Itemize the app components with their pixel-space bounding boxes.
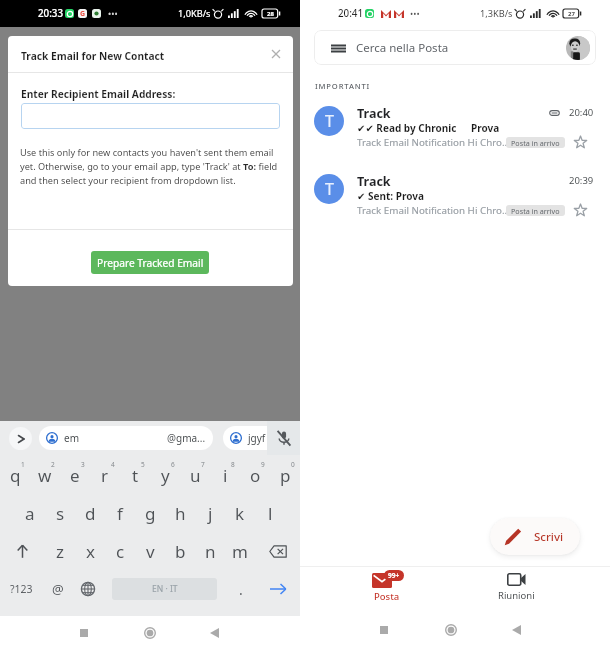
button[interactable]: o: [240, 456, 270, 494]
button[interactable]: l: [255, 494, 285, 532]
button[interactable]: Recents: [68, 617, 100, 649]
staticText: e: [70, 464, 80, 487]
staticText: l: [268, 502, 273, 525]
button[interactable]: q: [0, 456, 30, 494]
button[interactable]: Recents: [368, 614, 400, 646]
button[interactable]: .: [226, 570, 256, 608]
button[interactable]: Scrivi: [490, 518, 580, 555]
staticText: j: [208, 502, 213, 525]
staticText: 4: [111, 460, 115, 469]
button[interactable]: d: [75, 494, 105, 532]
button[interactable]: Sender avatar: [314, 174, 344, 204]
staticText: n: [205, 540, 216, 563]
button[interactable]: Star: [571, 203, 589, 218]
button[interactable]: Open navigation menu: [314, 30, 596, 65]
staticText: jgyf: [248, 431, 266, 445]
button[interactable]: v: [135, 532, 165, 570]
staticText: 1: [21, 460, 25, 469]
button[interactable]: Sender avatar: [300, 105, 610, 165]
staticText: Track: [357, 105, 391, 120]
button[interactable]: a: [15, 494, 45, 532]
staticText: w: [38, 464, 52, 487]
button[interactable]: Back: [198, 617, 230, 649]
button[interactable]: Change keyboard language: [73, 570, 103, 608]
staticText: T: [325, 110, 334, 132]
button[interactable]: em: [39, 426, 213, 450]
button[interactable]: Expand suggestions: [9, 427, 32, 450]
button[interactable]: Close: [266, 44, 286, 64]
button[interactable]: p: [270, 456, 300, 494]
staticText: 7: [201, 460, 205, 469]
staticText: 9: [261, 460, 265, 469]
staticText: Posta in arrivo: [511, 138, 560, 148]
button[interactable]: Voice input off: [267, 421, 300, 455]
staticText: s: [56, 502, 65, 525]
button[interactable]: t: [120, 456, 150, 494]
button[interactable]: j: [195, 494, 225, 532]
staticText: ?123: [10, 582, 33, 596]
staticText: o: [250, 464, 261, 487]
button[interactable]: Prepare Tracked Email: [91, 251, 209, 274]
staticText: g: [145, 502, 156, 525]
button[interactable]: n: [195, 532, 225, 570]
button[interactable]: Home: [435, 614, 467, 646]
staticText: 99+: [388, 571, 400, 580]
button[interactable]: Home: [134, 617, 166, 649]
staticText: t: [132, 464, 139, 487]
staticText: .: [239, 580, 243, 599]
button[interactable]: m: [225, 532, 255, 570]
button[interactable]: Back: [500, 614, 532, 646]
button[interactable]: Sender avatar: [300, 173, 610, 233]
staticText: v: [146, 540, 155, 563]
staticText: 20:40: [569, 106, 594, 119]
button[interactable]: Next: [256, 570, 300, 608]
staticText: Prova: [471, 121, 500, 135]
staticText: q: [10, 464, 21, 487]
button[interactable]: Account: [566, 36, 590, 60]
staticText: r: [101, 464, 109, 487]
button[interactable]: x: [75, 532, 105, 570]
button[interactable]: y: [150, 456, 180, 494]
staticText: u: [190, 464, 201, 487]
button[interactable]: Space: [112, 578, 217, 600]
staticText: ✔ Sent: Prova: [357, 189, 424, 203]
staticText: x: [86, 540, 95, 563]
button[interactable]: i: [210, 456, 240, 494]
staticText: a: [25, 502, 35, 525]
staticText: IMPORTANTI: [315, 81, 371, 91]
staticText: @: [52, 580, 64, 598]
button[interactable]: h: [165, 494, 195, 532]
button[interactable]: Shift: [0, 532, 45, 570]
button[interactable]: s: [45, 494, 75, 532]
staticText: •••: [410, 8, 420, 20]
staticText: Posta: [374, 590, 400, 603]
staticText: f: [117, 502, 123, 525]
button[interactable]: jgyf: [223, 426, 291, 450]
button[interactable]: u: [180, 456, 210, 494]
button[interactable]: r: [90, 456, 120, 494]
button[interactable]: w: [30, 456, 60, 494]
staticText: 27: [568, 10, 575, 18]
staticText: y: [161, 464, 170, 487]
button[interactable]: Star: [571, 135, 589, 150]
button[interactable]: z: [45, 532, 75, 570]
button[interactable]: e: [60, 456, 90, 494]
button[interactable]: Backspace: [255, 532, 300, 570]
button[interactable]: @: [43, 570, 73, 608]
staticText: 28: [267, 10, 274, 18]
staticText: Riunioni: [498, 589, 535, 602]
button[interactable]: Open navigation menu: [327, 37, 349, 59]
button[interactable]: g: [135, 494, 165, 532]
button[interactable]: c: [105, 532, 135, 570]
button[interactable]: 99+: [353, 567, 421, 611]
button[interactable]: Riunioni: [482, 567, 550, 611]
button[interactable]: Recipient email address field: [21, 103, 280, 129]
staticText: 1,3KB/s: [480, 7, 513, 20]
button[interactable]: Sender avatar: [314, 106, 344, 136]
button[interactable]: f: [105, 494, 135, 532]
button[interactable]: ?123: [0, 570, 43, 608]
staticText: 5: [141, 460, 145, 469]
button[interactable]: k: [225, 494, 255, 532]
staticText: Track Email Notification Hi Chro...: [357, 136, 510, 149]
button[interactable]: b: [165, 532, 195, 570]
